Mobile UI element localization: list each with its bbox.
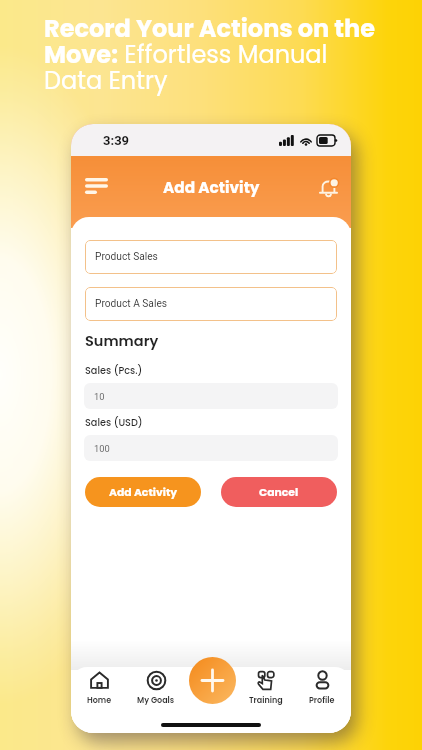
button[interactable]: 100	[84, 435, 338, 461]
staticText: Home	[87, 695, 112, 706]
staticText: My Goals	[137, 695, 175, 706]
button[interactable]: Add	[189, 657, 236, 704]
button[interactable]: Notifications	[308, 167, 348, 207]
button[interactable]: Product A Sales	[85, 287, 337, 321]
staticText: Cancel	[259, 485, 299, 500]
staticText: Sales (USD)	[85, 416, 143, 430]
button[interactable]: Training	[244, 670, 288, 706]
button[interactable]: My Goals	[134, 670, 178, 706]
button[interactable]: Add Activity	[85, 477, 201, 507]
staticText: 100	[94, 443, 110, 454]
staticText: Product A Sales	[95, 298, 168, 310]
button[interactable]: Cancel	[221, 477, 337, 507]
staticText: Add Activity	[109, 485, 178, 500]
staticText: 3:39	[103, 133, 130, 148]
button[interactable]: Home	[77, 670, 121, 706]
button[interactable]: Profile	[300, 670, 344, 706]
button[interactable]: Product Sales	[85, 240, 337, 274]
staticText: Record Your Actions on the Move: Effortl…	[44, 12, 382, 97]
staticText: Training	[249, 695, 283, 706]
staticText: Add Activity	[163, 177, 260, 198]
staticText: Product Sales	[95, 251, 158, 263]
button[interactable]: Menu	[76, 166, 116, 206]
staticText: Summary	[85, 331, 159, 351]
staticText: Sales (Pcs.)	[85, 364, 143, 378]
button[interactable]: 10	[84, 383, 338, 409]
staticText: Profile	[309, 695, 335, 706]
staticText: 10	[94, 391, 105, 402]
